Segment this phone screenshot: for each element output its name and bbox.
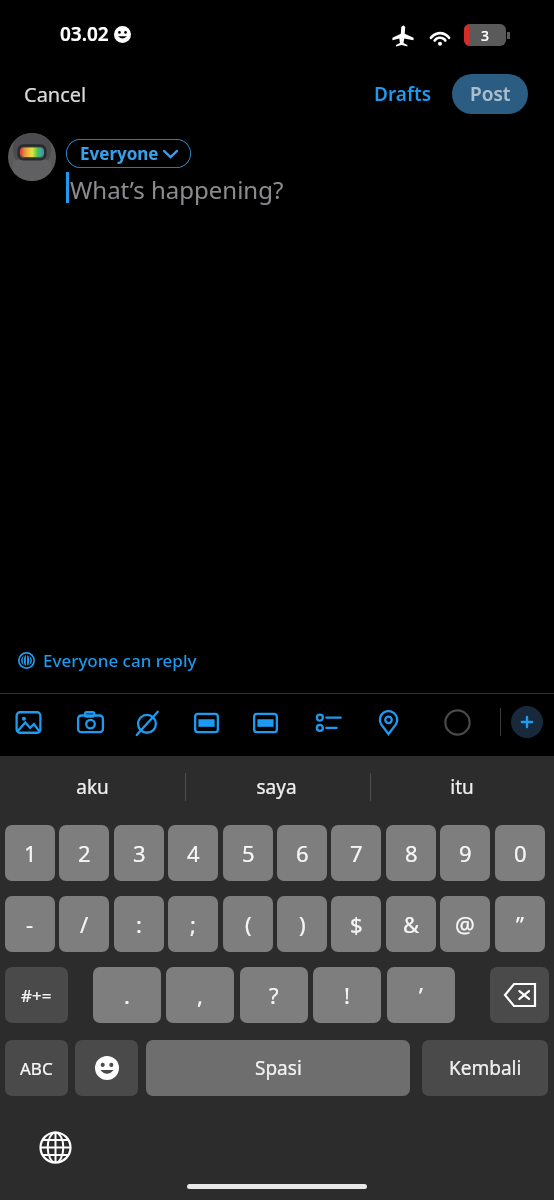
button[interactable]: ; (168, 896, 218, 952)
button[interactable]: Add post (511, 706, 543, 738)
staticText: $ (350, 909, 363, 939)
staticText: 8 (405, 838, 418, 868)
button[interactable]: Change keyboard language (37, 1129, 73, 1165)
staticText: What’s happening? (70, 173, 284, 206)
staticText: itu (450, 774, 474, 800)
staticText: ! (344, 980, 350, 1010)
staticText: Spasi (255, 1055, 302, 1081)
staticText: ; (190, 909, 196, 939)
staticText: 3 (133, 838, 146, 868)
button[interactable]: ( (223, 896, 273, 952)
staticText: Kembali (449, 1055, 522, 1081)
button[interactable]: 1 (5, 825, 55, 881)
staticText: , (197, 980, 203, 1010)
button[interactable]: Spasi (146, 1040, 410, 1096)
button[interactable]: GIF slash (125, 700, 169, 744)
button[interactable]: , (166, 967, 234, 1023)
button[interactable]: Everyone (66, 139, 191, 168)
staticText: ( (245, 909, 252, 939)
button[interactable]: / (59, 896, 109, 952)
staticText: 7 (350, 838, 363, 868)
button[interactable]: ABC (5, 1040, 68, 1096)
button[interactable]: ) (277, 896, 327, 952)
button[interactable]: 6 (277, 825, 327, 881)
button[interactable]: 3 (114, 825, 164, 881)
staticText: & (403, 909, 420, 939)
staticText: @ (455, 909, 475, 939)
staticText: 2 (78, 838, 91, 868)
button[interactable]: 4 (168, 825, 218, 881)
button[interactable]: Camera (68, 700, 112, 744)
staticText: ’ (419, 980, 423, 1010)
button[interactable]: Poll (306, 700, 350, 744)
staticText: ABC (20, 1057, 53, 1080)
button[interactable]: 9 (440, 825, 490, 881)
staticText: . (124, 980, 130, 1010)
button[interactable]: Backspace (490, 967, 549, 1023)
button[interactable]: $ (331, 896, 381, 952)
staticText: aku (76, 774, 109, 800)
staticText: 0 (514, 838, 527, 868)
button[interactable]: Post (452, 74, 528, 114)
button[interactable]: Emoji (75, 1040, 138, 1096)
button[interactable]: 8 (386, 825, 436, 881)
button[interactable]: aku (0, 756, 184, 818)
button[interactable] (8, 133, 56, 181)
button[interactable]: saya (184, 756, 369, 818)
button[interactable]: Everyone can reply (18, 645, 205, 676)
staticText: ? (269, 980, 279, 1010)
button[interactable]: Cancel (10, 73, 101, 116)
other: Airplane mode (392, 24, 414, 46)
button[interactable]: Drafts (366, 73, 440, 115)
staticText: Drafts (374, 81, 432, 107)
staticText: 3 (481, 26, 490, 45)
button[interactable]: & (386, 896, 436, 952)
button[interactable]: . (93, 967, 161, 1023)
button[interactable]: ! (313, 967, 381, 1023)
staticText: 5 (242, 838, 255, 868)
staticText: 03.02 (60, 21, 109, 47)
button[interactable]: Add photo (6, 700, 50, 744)
button[interactable]: : (114, 896, 164, 952)
button[interactable]: 2 (59, 825, 109, 881)
staticText: ” (516, 909, 524, 939)
button[interactable]: Kembali (422, 1040, 548, 1096)
staticText: Everyone (80, 142, 159, 165)
button[interactable]: ” (495, 896, 545, 952)
button[interactable]: itu (369, 756, 554, 818)
button[interactable]: @ (440, 896, 490, 952)
button[interactable]: 7 (331, 825, 381, 881)
button[interactable]: #+= (5, 967, 68, 1023)
staticText: : (136, 909, 142, 939)
staticText: saya (256, 774, 297, 800)
button[interactable]: 5 (223, 825, 273, 881)
staticText: / (80, 909, 89, 939)
staticText: 6 (296, 838, 309, 868)
other: Wi-Fi (428, 25, 452, 49)
button[interactable]: ? (240, 967, 308, 1023)
button[interactable]: Progress (435, 700, 479, 744)
button[interactable]: 0 (495, 825, 545, 881)
staticText: Cancel (24, 81, 87, 108)
staticText: ) (299, 909, 306, 939)
staticText: 9 (459, 838, 472, 868)
staticText: Post (470, 81, 511, 107)
staticText: 1 (24, 838, 37, 868)
button[interactable]: Live (184, 700, 228, 744)
button[interactable]: Location (366, 700, 410, 744)
button[interactable]: - (5, 896, 55, 952)
button[interactable]: ’ (387, 967, 455, 1023)
staticText: #+= (21, 984, 52, 1007)
button[interactable]: GIF (243, 700, 287, 744)
staticText: Everyone can reply (43, 649, 197, 672)
staticText: - (26, 909, 34, 939)
staticText: 4 (187, 838, 200, 868)
